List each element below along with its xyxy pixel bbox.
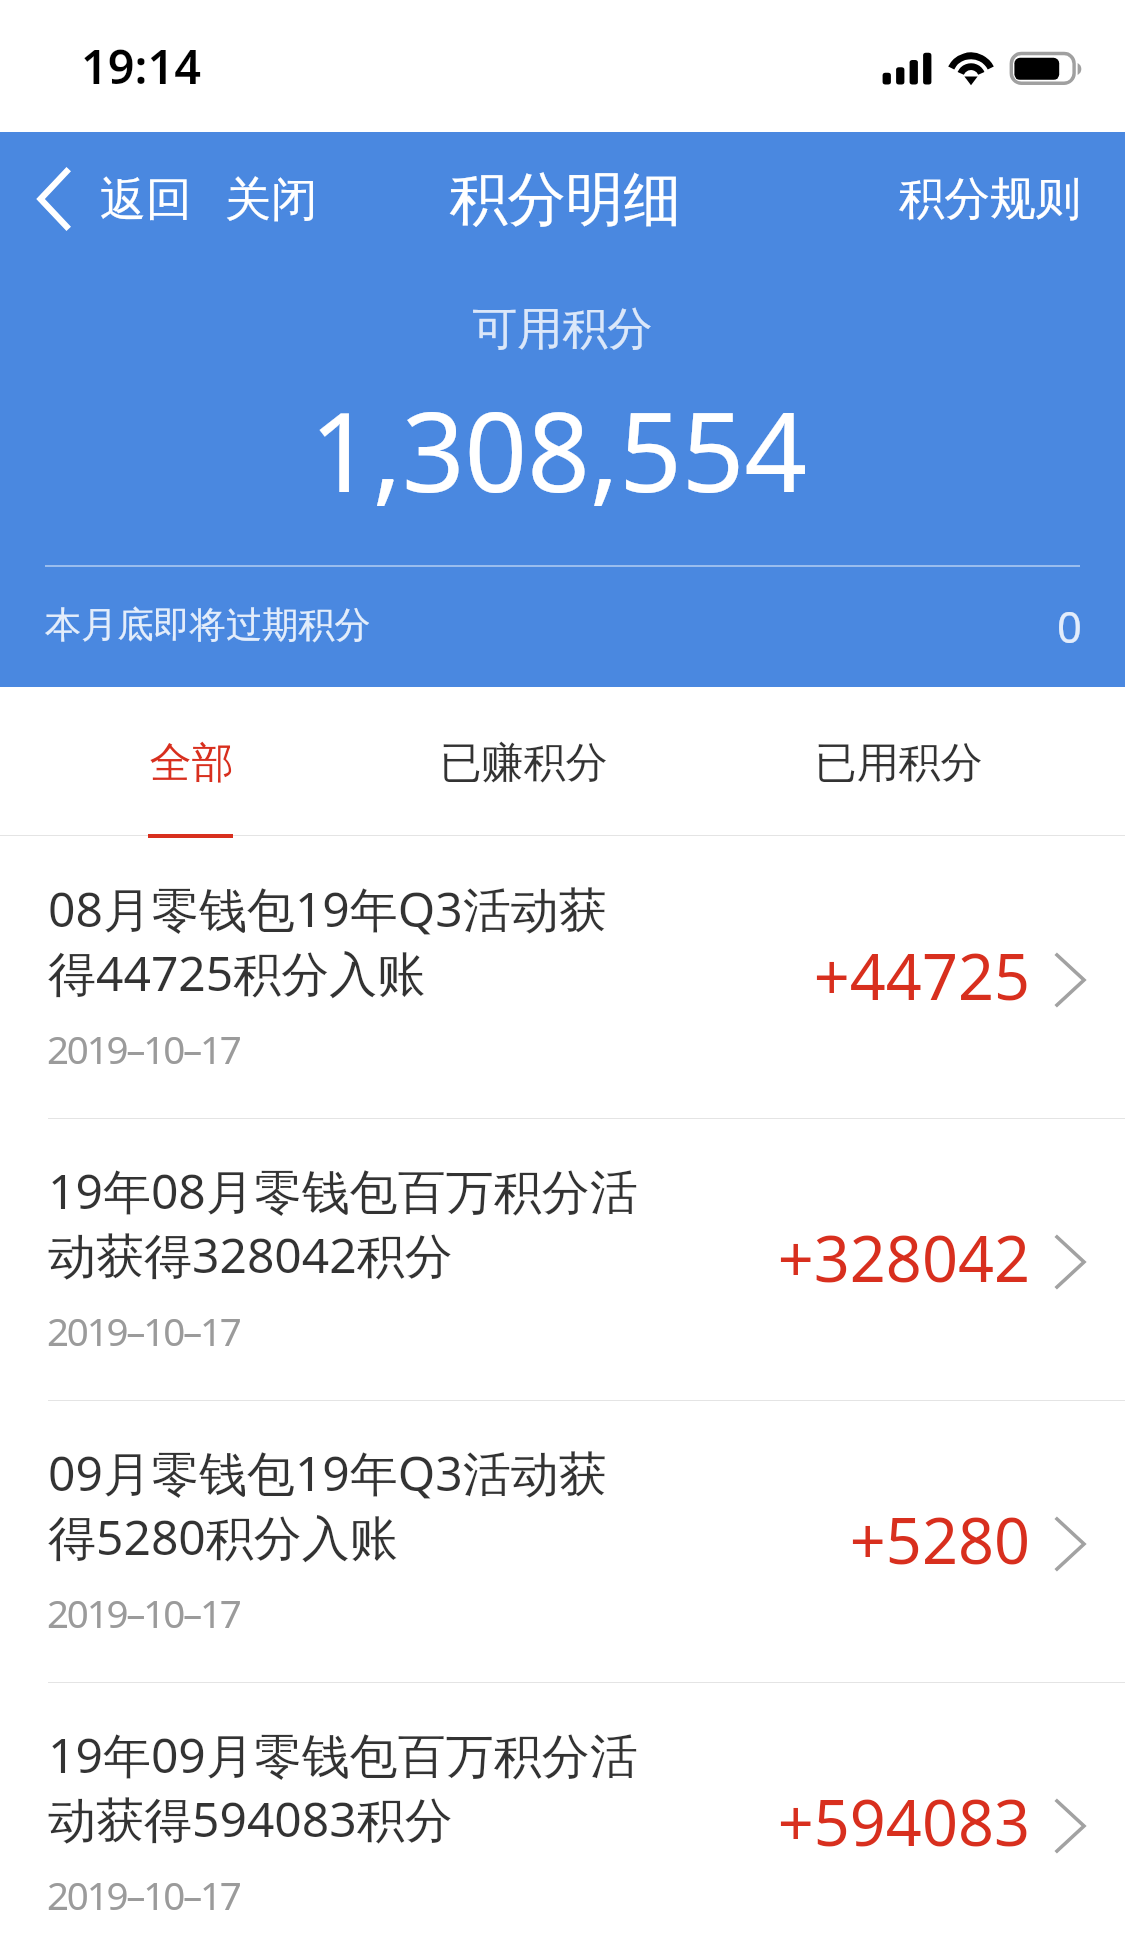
button[interactable]: 已用积分 xyxy=(784,700,1013,835)
button[interactable]: 积分规则 xyxy=(880,155,1090,245)
other: 查看详情 xyxy=(1050,1794,1090,1858)
staticText: 19年09月零钱包百万积分活 动获得594083积分 xyxy=(48,1722,638,1851)
staticText: 积分规则 xyxy=(880,170,1081,227)
button[interactable]: 全部 xyxy=(119,700,264,835)
staticText: 1,308,554 xyxy=(0,375,1121,524)
staticText: 2019–10–17 xyxy=(47,1305,240,1357)
button[interactable]: 09月零钱包19年Q3活动获 得5280积分入账 xyxy=(0,1400,1125,1682)
staticText: 0 xyxy=(0,596,1082,655)
button[interactable]: 返回 xyxy=(20,150,205,250)
staticText: 本月底即将过期积分 xyxy=(45,602,371,648)
staticText: 08月零钱包19年Q3活动获 得44725积分入账 xyxy=(48,876,607,1005)
button[interactable]: 19年09月零钱包百万积分活 动获得594083积分 xyxy=(0,1682,1125,1942)
staticText: 2019–10–17 xyxy=(47,1023,240,1075)
staticText: +44725 xyxy=(0,933,1030,1019)
other: 查看详情 xyxy=(1050,1512,1090,1576)
staticText: +5280 xyxy=(0,1497,1030,1583)
staticText: 09月零钱包19年Q3活动获 得5280积分入账 xyxy=(48,1440,607,1569)
button[interactable]: 08月零钱包19年Q3活动获 得44725积分入账 xyxy=(0,836,1125,1118)
button[interactable]: 关闭 xyxy=(218,155,328,245)
other: 查看详情 xyxy=(1050,1230,1090,1294)
staticText: 可用积分 xyxy=(0,301,1125,358)
staticText: 全部 xyxy=(149,737,234,790)
button[interactable]: 已赚积分 xyxy=(409,700,638,835)
staticText: 关闭 xyxy=(225,171,317,229)
staticText: 已赚积分 xyxy=(439,737,608,790)
other: 查看详情 xyxy=(1050,948,1090,1012)
staticText: 19:14 xyxy=(81,34,201,98)
staticText: 返回 xyxy=(100,171,192,229)
staticText: 2019–10–17 xyxy=(47,1869,240,1921)
staticText: 已用积分 xyxy=(814,737,983,790)
staticText: +328042 xyxy=(0,1215,1030,1301)
staticText: +594083 xyxy=(0,1779,1030,1865)
staticText: 19年08月零钱包百万积分活 动获得328042积分 xyxy=(48,1158,638,1287)
staticText: 积分明细 xyxy=(3,163,1125,236)
button[interactable]: 19年08月零钱包百万积分活 动获得328042积分 xyxy=(0,1118,1125,1400)
staticText: 2019–10–17 xyxy=(47,1587,240,1639)
